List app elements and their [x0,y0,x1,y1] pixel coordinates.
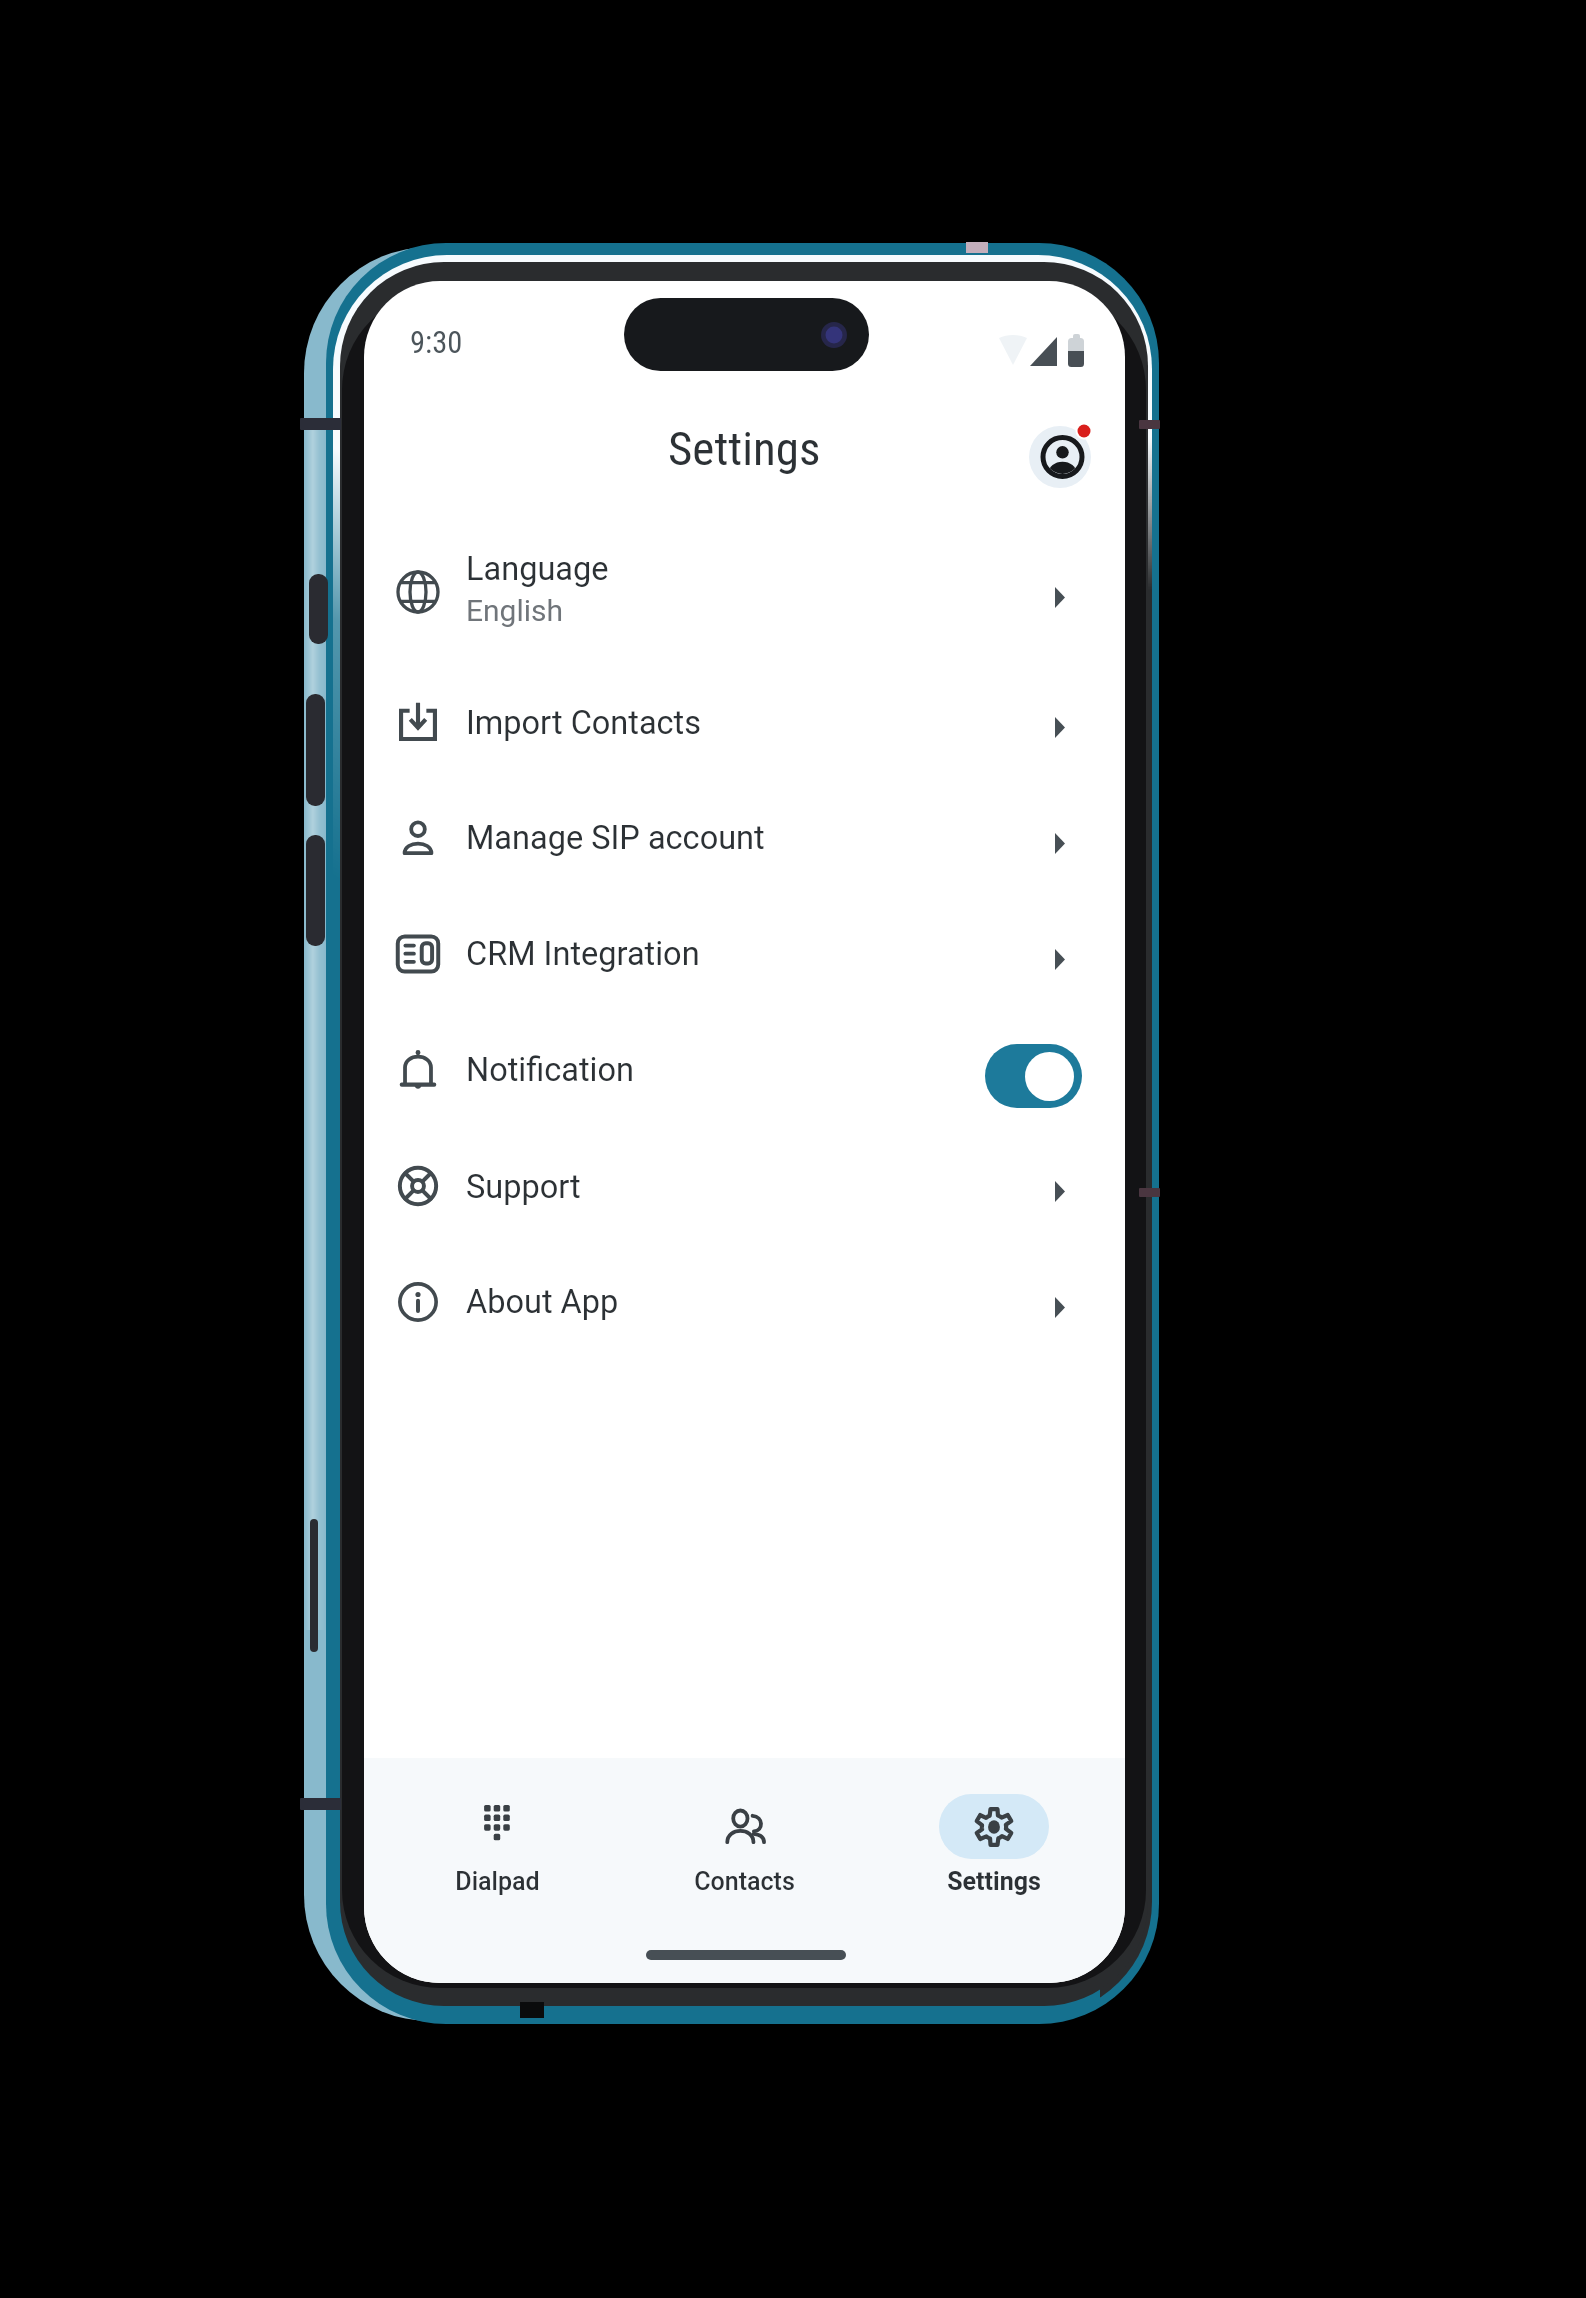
button[interactable]: Dialpad [417,1788,577,1904]
button[interactable]: Notification [364,1012,1125,1128]
staticText: About App [466,1283,619,1321]
staticText: Notification [466,1051,634,1089]
button[interactable]: Manage SIP account [364,780,1125,896]
button[interactable]: Notification enabled [985,1044,1082,1108]
staticText: English [466,593,564,628]
button[interactable]: Profile [1029,426,1091,488]
button[interactable]: Support [364,1128,1125,1244]
staticText: 9:30 [410,325,463,361]
staticText: Contacts [694,1867,795,1896]
button[interactable]: Import Contacts [364,664,1125,780]
staticText: CRM Integration [466,935,700,973]
button[interactable]: Settings [914,1788,1074,1904]
staticText: Import Contacts [466,704,701,742]
button[interactable]: Contacts [664,1788,824,1904]
staticText: Manage SIP account [466,819,765,857]
staticText: Settings [947,1867,1041,1896]
staticText: Support [466,1168,581,1206]
button[interactable]: CRM Integration [364,896,1125,1012]
button[interactable]: About App [364,1244,1125,1360]
button[interactable]: Language [364,534,1125,650]
staticText: Settings [668,421,821,476]
staticText: Language [466,550,609,588]
staticText: Dialpad [455,1867,540,1896]
